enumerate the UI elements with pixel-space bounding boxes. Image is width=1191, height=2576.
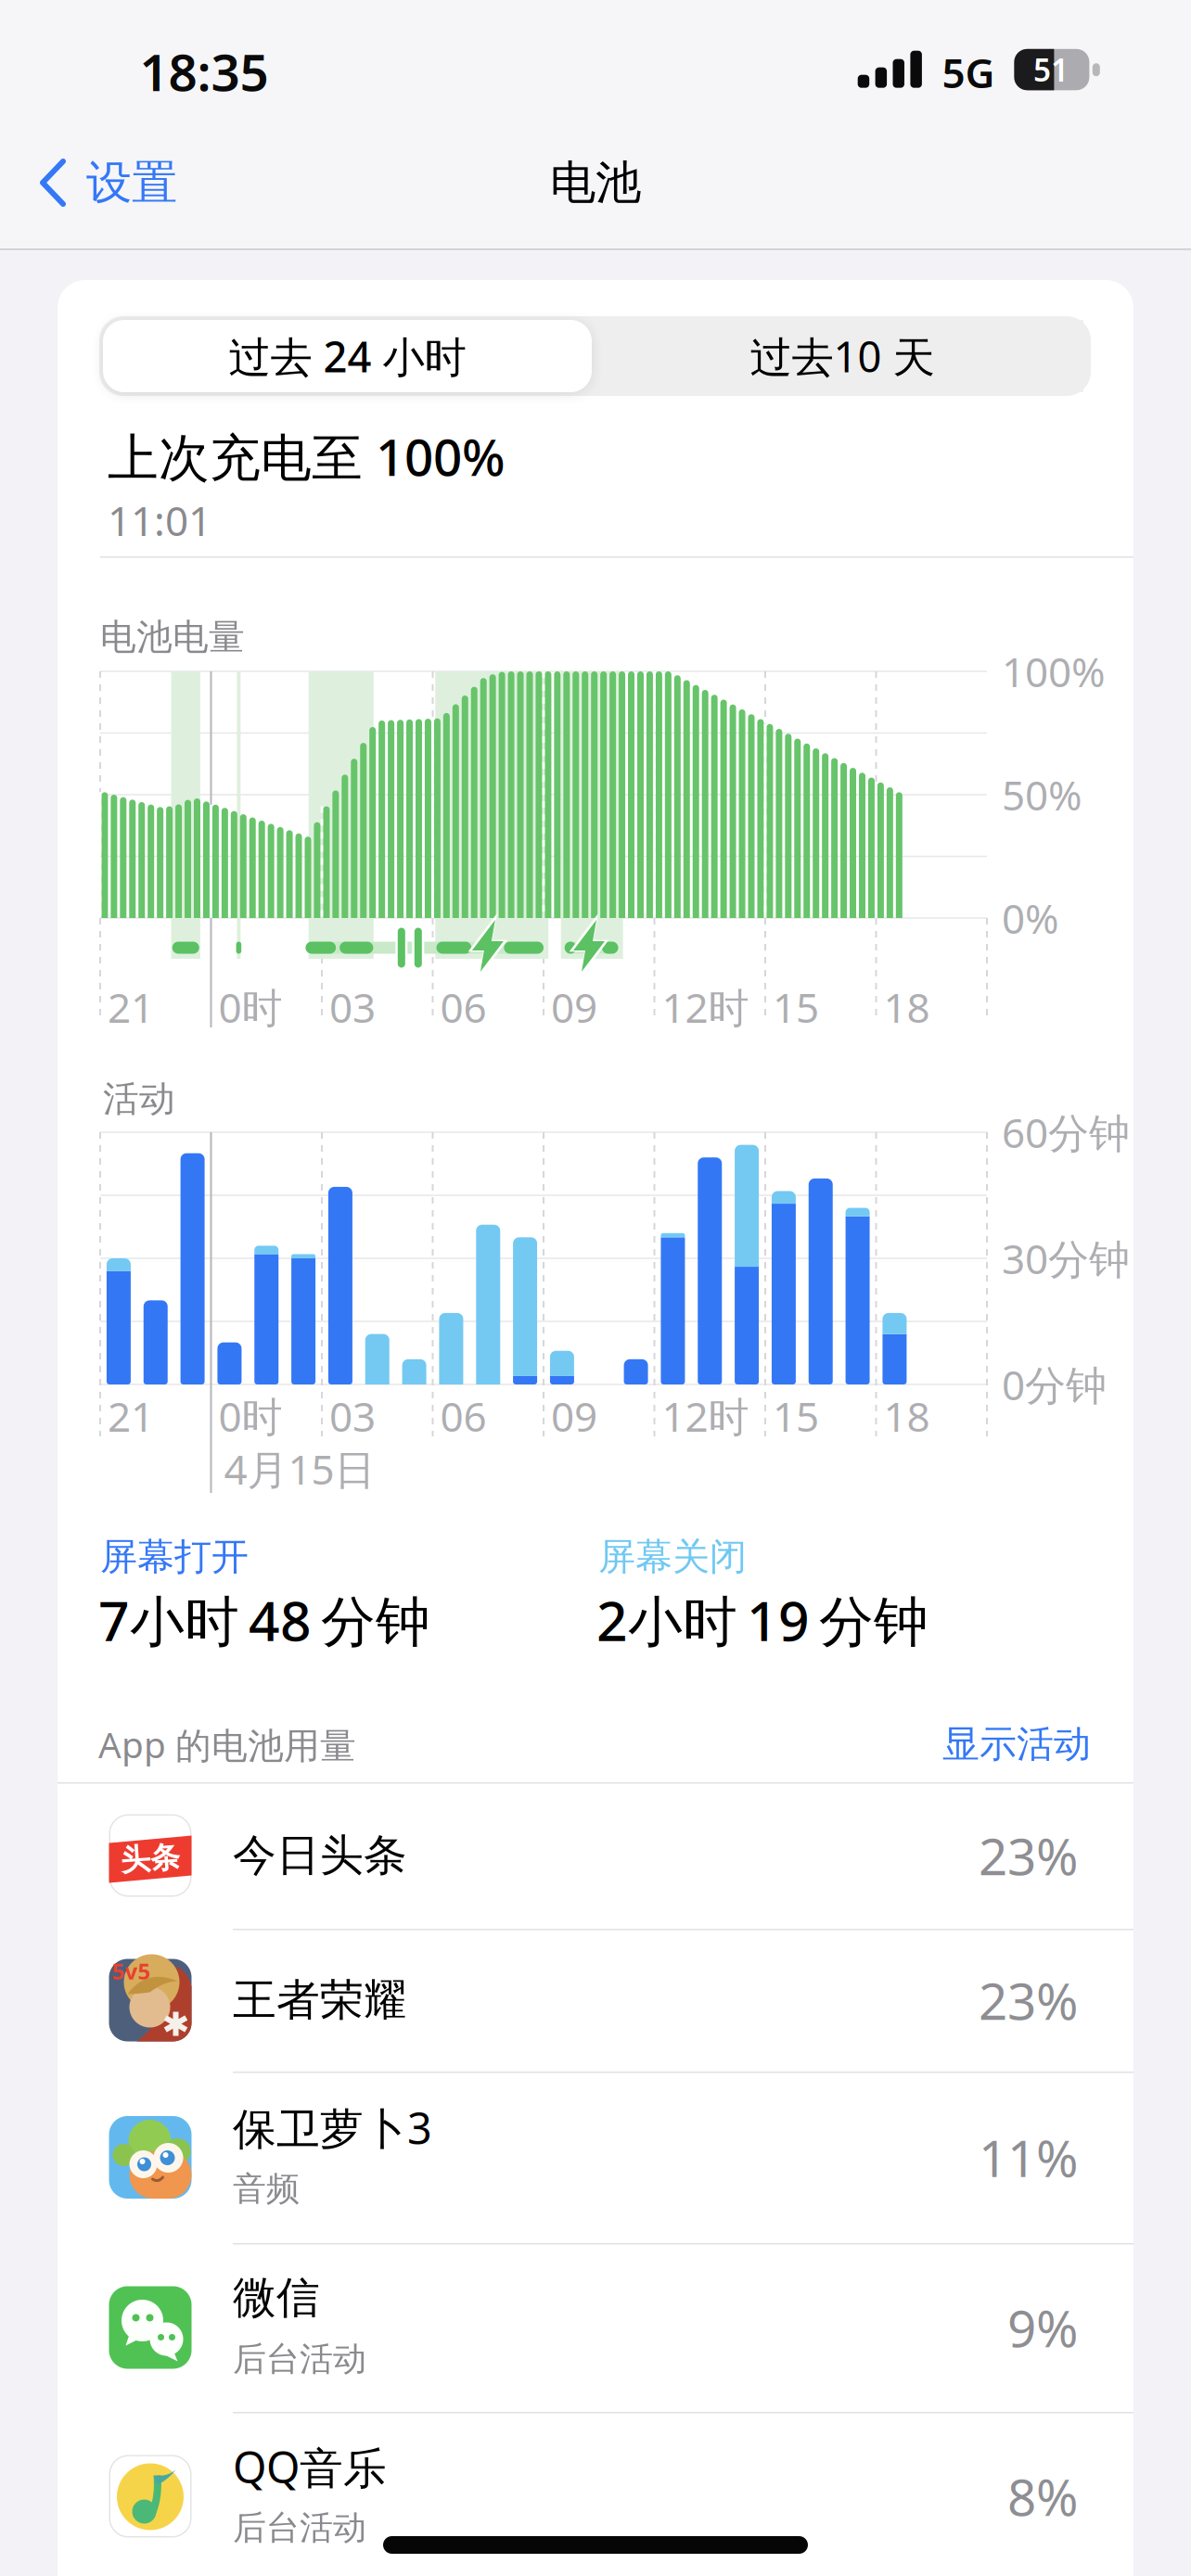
button[interactable]: 头条 — [58, 1782, 1133, 1929]
staticText: 11% — [979, 2124, 1078, 2191]
button[interactable]: 保卫萝卜3 — [58, 2072, 1133, 2243]
staticText: 微信 — [233, 2271, 320, 2324]
staticText: 30分钟 — [1002, 1231, 1130, 1285]
staticText: 03 — [329, 1389, 376, 1443]
staticText: 2小时 19 分钟 — [596, 1584, 928, 1656]
staticText: 5G — [942, 45, 995, 99]
staticText: 23% — [979, 1822, 1078, 1889]
staticText: 7小时 48 分钟 — [98, 1584, 430, 1656]
staticText: App 的电池用量 — [98, 1720, 356, 1768]
button[interactable]: 微信 — [58, 2243, 1133, 2412]
staticText: 后台活动 — [233, 2339, 366, 2380]
staticText: 音频 — [233, 2168, 300, 2209]
staticText: 屏幕关闭 — [598, 1534, 747, 1580]
staticText: 过去 24 小时 — [229, 328, 466, 384]
button[interactable]: 过去10 天 — [601, 320, 1083, 392]
staticText: 保卫萝卜3 — [233, 2099, 432, 2156]
staticText: 王者荣耀 — [233, 1974, 407, 2027]
staticText: 09 — [551, 1389, 597, 1443]
staticText: 9% — [1007, 2294, 1078, 2361]
staticText: 活动 — [103, 1077, 175, 1121]
staticText: 今日头条 — [233, 1829, 407, 1882]
button[interactable]: 5v5 — [58, 1929, 1133, 2072]
staticText: 上次充电至 100% — [108, 423, 506, 490]
staticText: 0分钟 — [1002, 1357, 1107, 1412]
staticText: 18:35 — [140, 38, 269, 105]
staticText: 100% — [1002, 644, 1106, 698]
button[interactable]: 过去 24 小时 — [103, 320, 592, 392]
staticText: 12时 — [662, 1389, 749, 1443]
staticText: 21 — [108, 1389, 154, 1443]
staticText: 0时 — [218, 1389, 282, 1443]
staticText: 18 — [884, 980, 930, 1034]
staticText: 12时 — [662, 980, 749, 1034]
staticText: 21 — [108, 980, 154, 1034]
button[interactable]: 显示活动 — [831, 1702, 1091, 1786]
staticText: 03 — [329, 980, 376, 1034]
staticText: 过去10 天 — [750, 328, 935, 384]
staticText: 头条 — [121, 1840, 180, 1877]
button[interactable]: QQ音乐 — [58, 2412, 1133, 2576]
staticText: 0时 — [218, 980, 282, 1034]
staticText: 18 — [884, 1389, 930, 1443]
staticText: 06 — [440, 1389, 487, 1443]
staticText: 60分钟 — [1002, 1105, 1130, 1159]
staticText: 50% — [1002, 768, 1082, 822]
staticText: 15 — [773, 1389, 819, 1443]
staticText: 0% — [1002, 891, 1059, 945]
staticText: 电池电量 — [100, 615, 245, 659]
staticText: 15 — [773, 980, 819, 1034]
staticText: 11:01 — [108, 493, 211, 547]
staticText: 4月15日 — [224, 1442, 375, 1496]
staticText: 设置 — [86, 155, 177, 211]
staticText: 06 — [440, 980, 487, 1034]
staticText: 51 — [1033, 49, 1069, 90]
staticText: 5v5 — [112, 1956, 151, 1986]
staticText: 8% — [1007, 2463, 1078, 2530]
staticText: 电池 — [550, 155, 641, 211]
button[interactable]: 返回设置 — [37, 136, 278, 229]
staticText: 23% — [979, 1966, 1078, 2034]
staticText: QQ音乐 — [233, 2438, 387, 2495]
staticText: 09 — [551, 980, 597, 1034]
staticText: 显示活动 — [942, 1721, 1091, 1767]
staticText: 后台活动 — [233, 2507, 366, 2548]
staticText: 屏幕打开 — [100, 1534, 249, 1580]
